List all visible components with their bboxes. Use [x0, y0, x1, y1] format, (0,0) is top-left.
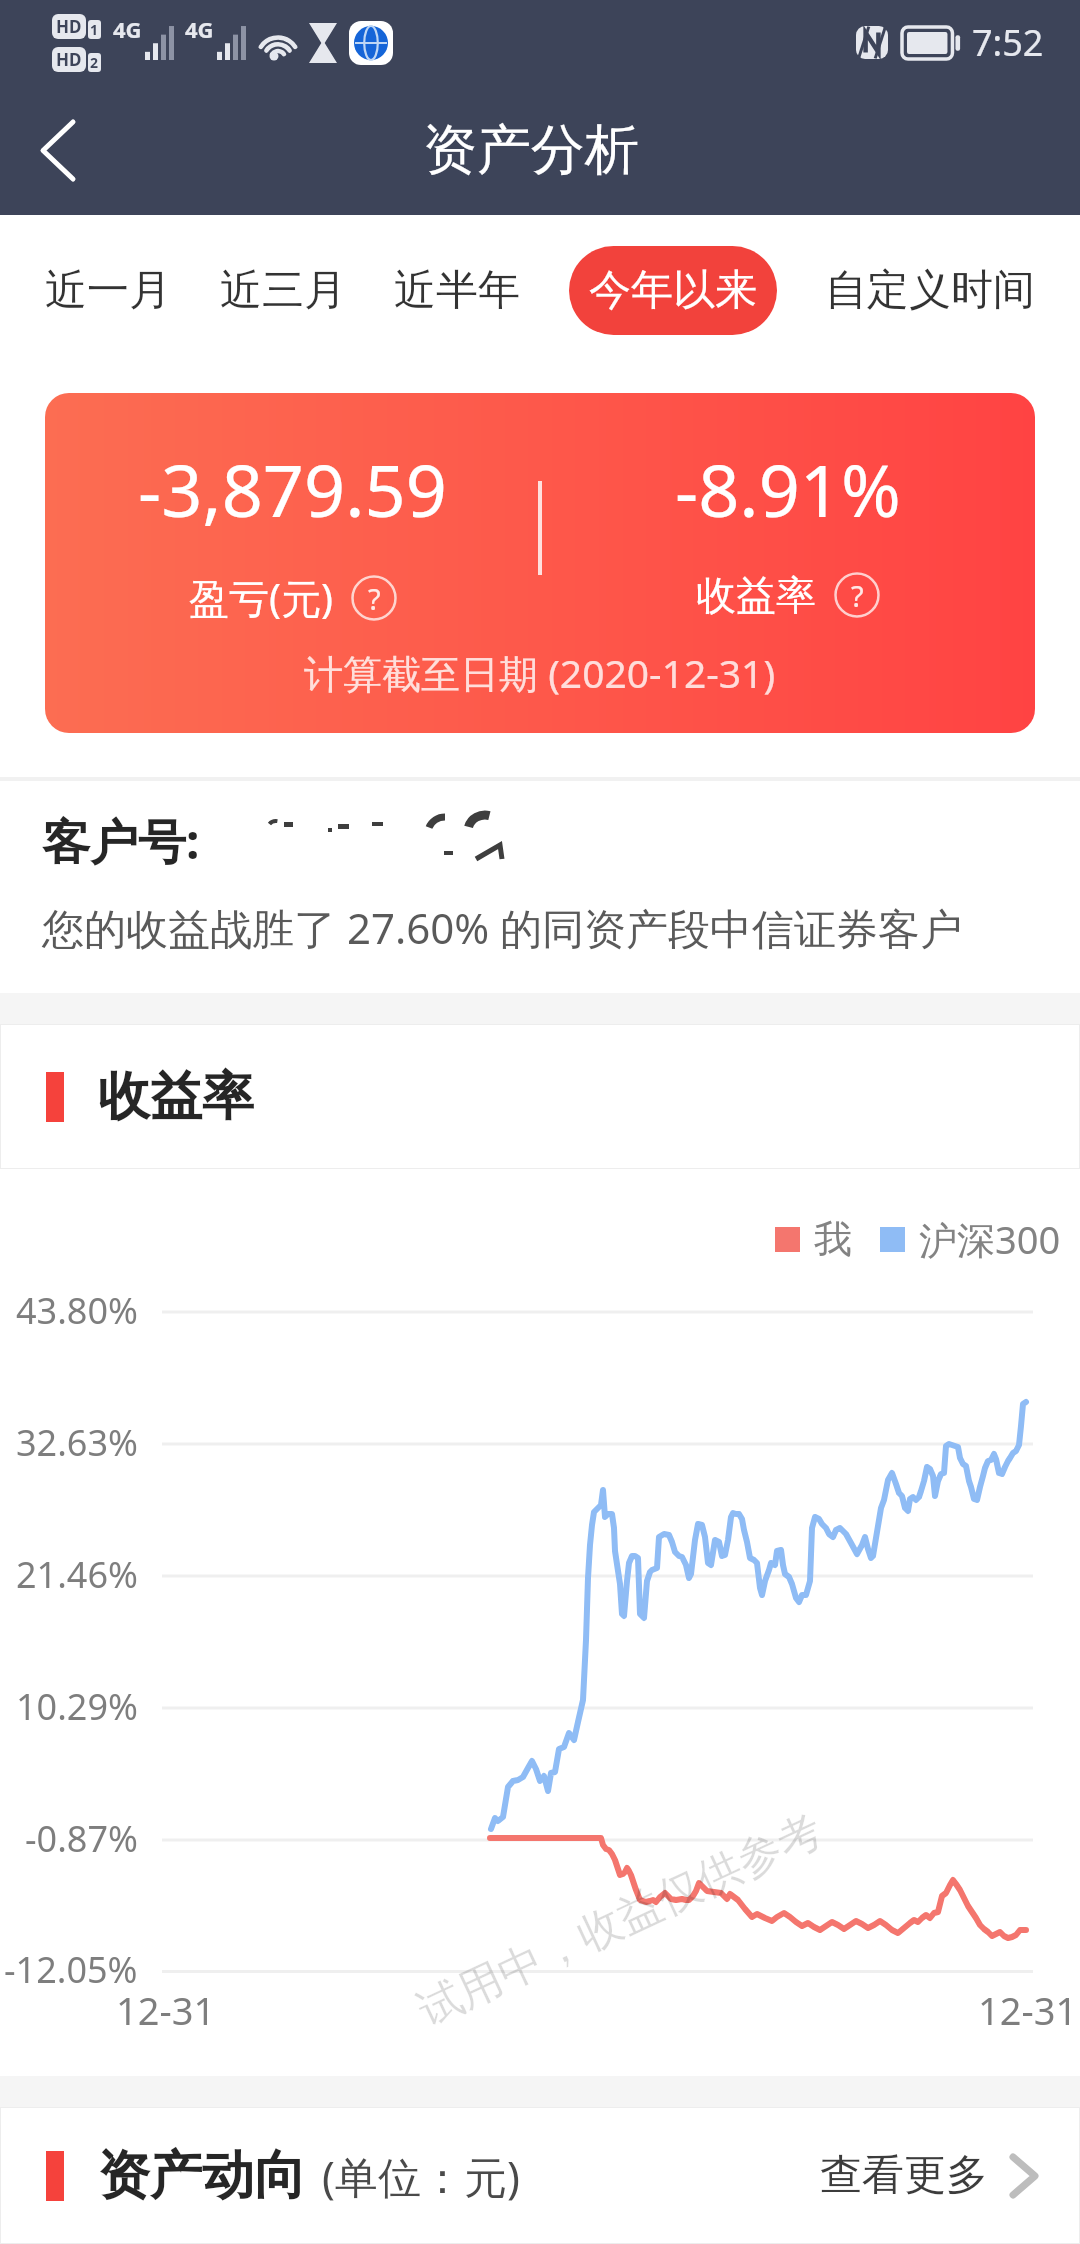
staticText: 试用中，收益仅供参考 — [409, 1803, 831, 2038]
staticText: 近半年 — [394, 264, 520, 317]
button[interactable]: 资产动向 — [0, 2107, 1080, 2244]
staticText: 客户号: — [42, 808, 200, 874]
staticText: ? — [368, 579, 381, 618]
staticText: -8.91% — [675, 440, 901, 538]
staticText: 查看更多 — [820, 2149, 988, 2202]
staticText: 近三月 — [220, 264, 346, 317]
staticText: 您的收益战胜了 27.60% 的同资产段中信证券客户 — [42, 899, 963, 956]
staticText: 收益率 — [98, 1064, 254, 1130]
staticText: -3,879.59 — [138, 440, 447, 538]
button[interactable]: -3,879.59 — [45, 393, 1035, 733]
staticText: 我 — [814, 1215, 852, 1263]
staticText: (单位：元) — [322, 2147, 520, 2206]
staticText: 近一月 — [45, 264, 171, 317]
button[interactable]: Help — [351, 575, 397, 621]
staticText: 7:52 — [972, 18, 1044, 67]
staticText: 32.63% — [16, 1418, 138, 1467]
staticText: -12.05% — [4, 1945, 138, 1994]
button[interactable]: 近一月 — [45, 246, 171, 335]
staticText: 12-31 — [978, 1984, 1078, 2036]
staticText: HD — [56, 15, 82, 38]
staticText: 12-31 — [116, 1984, 216, 2036]
button[interactable]: 今年以来 — [569, 246, 777, 335]
button[interactable]: 近半年 — [394, 246, 520, 335]
staticText: 1 — [90, 20, 99, 39]
staticText: -0.87% — [25, 1814, 138, 1863]
staticText: 资产分析 — [423, 116, 639, 184]
staticText: 4G — [185, 14, 214, 44]
staticText: 盈亏(元) — [189, 570, 333, 625]
staticText: 自定义时间 — [825, 264, 1035, 317]
button[interactable]: Back — [10, 102, 106, 198]
button[interactable]: 近三月 — [220, 246, 346, 335]
staticText: 10.29% — [16, 1682, 138, 1731]
staticText: HD — [56, 48, 82, 71]
staticText: 计算截至日期 (2020-12-31) — [304, 646, 776, 699]
staticText: 2 — [90, 53, 99, 72]
staticText: 今年以来 — [589, 264, 757, 317]
staticText: 资产动向 — [98, 2143, 306, 2209]
staticText: 沪深300 — [919, 1213, 1061, 1265]
staticText: 21.46% — [16, 1550, 138, 1599]
staticText: 4G — [113, 14, 142, 44]
staticText: ? — [851, 576, 864, 615]
staticText: 43.80% — [16, 1286, 138, 1335]
button[interactable]: Help — [834, 572, 880, 618]
staticText: 收益率 — [696, 570, 816, 620]
button[interactable]: 自定义时间 — [825, 246, 1035, 335]
